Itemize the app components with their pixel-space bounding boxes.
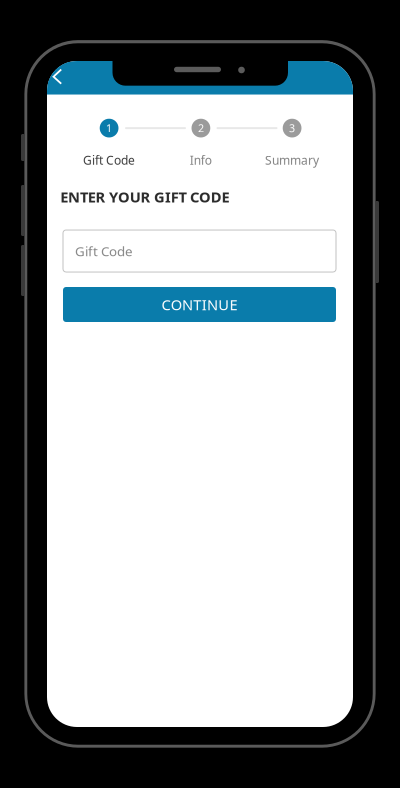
staticText: Info [190,152,212,168]
staticText: 2 [198,121,204,135]
staticText: 1 [106,121,112,135]
button[interactable]: Back [48,62,80,94]
button[interactable]: CONTINUE [63,287,336,322]
staticText: Gift Code [83,152,135,168]
staticText: Gift Code [75,242,133,260]
staticText: Summary [265,152,319,168]
staticText: ENTER YOUR GIFT CODE [60,187,229,206]
staticText: CONTINUE [161,295,238,314]
staticText: 3 [289,121,295,135]
